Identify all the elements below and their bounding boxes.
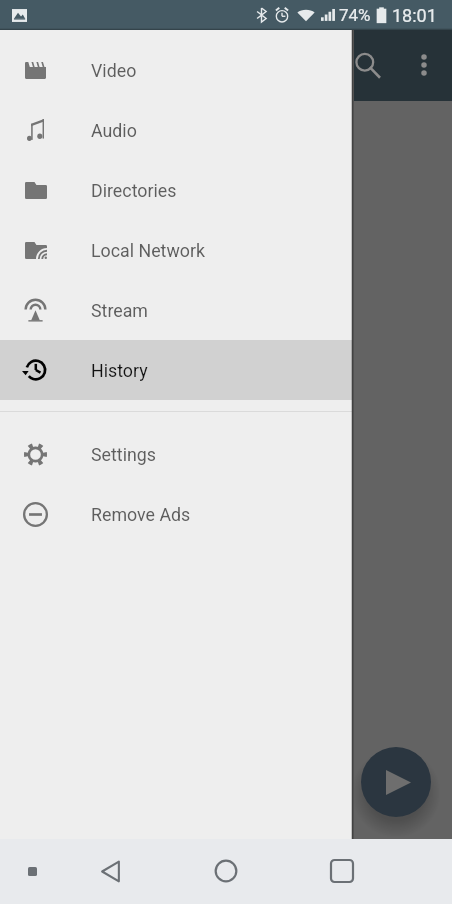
button[interactable]: Keyboard (8, 847, 56, 895)
staticText: 74% (339, 5, 371, 25)
staticText: Directories (91, 180, 177, 201)
button[interactable]: Home (202, 847, 250, 895)
button[interactable]: Settings (0, 424, 352, 484)
staticText: Audio (91, 120, 137, 141)
staticText: Settings (91, 444, 156, 465)
button[interactable]: Audio (0, 100, 352, 160)
button[interactable]: Local Network (0, 220, 352, 280)
staticText: Video (91, 60, 137, 81)
button[interactable]: Stream (0, 280, 352, 340)
staticText: History (91, 360, 148, 381)
button[interactable]: Search (343, 41, 391, 89)
button[interactable]: Remove Ads (0, 484, 352, 544)
staticText: Stream (91, 300, 148, 321)
staticText: Local Network (91, 240, 206, 261)
button[interactable]: Video (0, 40, 352, 100)
button[interactable]: Back (86, 847, 134, 895)
button[interactable]: History (0, 340, 352, 400)
button[interactable]: Play (361, 747, 431, 817)
staticText: 18:01 (392, 5, 437, 26)
button[interactable]: Recents (318, 847, 366, 895)
button[interactable]: Directories (0, 160, 352, 220)
staticText: Remove Ads (91, 504, 191, 525)
button[interactable]: More options (400, 41, 448, 89)
